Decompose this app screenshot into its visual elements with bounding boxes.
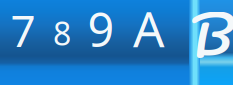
staticText: 7 (10, 1, 35, 59)
staticText: 8 (53, 12, 71, 54)
staticText: A (133, 0, 165, 61)
staticText: 9 (87, 0, 114, 60)
staticText: B (191, 0, 233, 78)
